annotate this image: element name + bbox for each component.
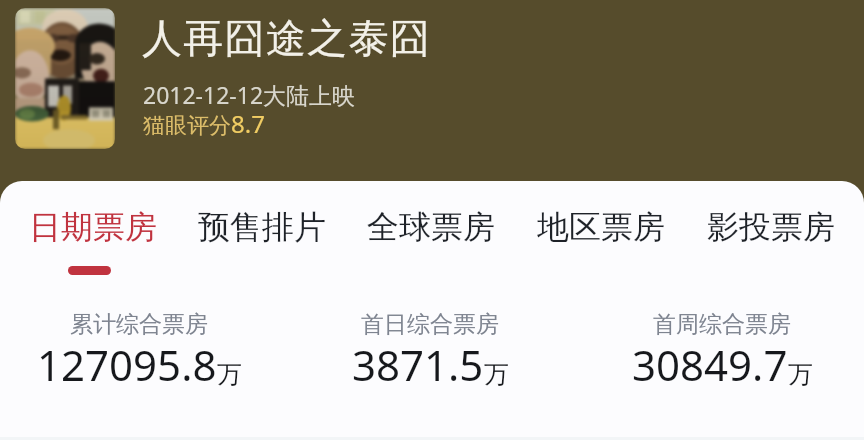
staticText: 2012-12-12大陆上映 <box>143 79 356 110</box>
staticText: 日期票房 <box>29 207 157 247</box>
staticText: 首日综合票房 <box>361 310 499 339</box>
button[interactable]: 日期票房 <box>8 207 177 275</box>
button[interactable]: 预售排片 <box>177 207 346 266</box>
staticText: 万 <box>788 359 813 390</box>
staticText: 3871.5 <box>352 336 484 393</box>
button[interactable]: 地区票房 <box>516 207 686 266</box>
button[interactable]: 首日综合票房 <box>295 310 565 396</box>
staticText: 人再囧途之泰囧 <box>142 13 432 63</box>
button[interactable]: 首周综合票房 <box>587 310 857 396</box>
staticText: 30849.7 <box>632 336 788 393</box>
button[interactable]: 全球票房 <box>346 207 516 266</box>
staticText: 首周综合票房 <box>653 310 791 339</box>
staticText: 预售排片 <box>198 207 326 247</box>
staticText: 猫眼评分 <box>143 112 231 140</box>
staticText: 影投票房 <box>707 207 835 247</box>
staticText: 127095.8 <box>37 336 217 393</box>
staticText: 万 <box>484 359 509 390</box>
staticText: 8.7 <box>231 107 265 140</box>
staticText: 地区票房 <box>537 207 665 247</box>
button[interactable]: 累计综合票房 <box>4 310 274 396</box>
button[interactable]: Movie poster <box>15 8 115 149</box>
staticText: 万 <box>217 359 242 390</box>
button[interactable]: 影投票房 <box>686 207 856 266</box>
staticText: 累计综合票房 <box>70 310 208 339</box>
staticText: 全球票房 <box>367 207 495 247</box>
